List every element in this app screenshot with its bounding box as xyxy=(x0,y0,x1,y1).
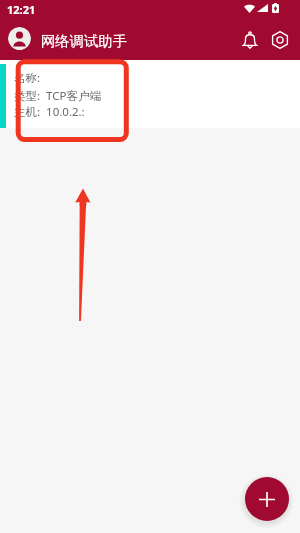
button[interactable]: 名称: xyxy=(0,60,300,128)
button[interactable]: Account xyxy=(8,27,31,50)
staticText: 主机: 10.0.2.: xyxy=(14,104,85,120)
staticText: 名称: xyxy=(14,70,47,86)
staticText: 网络调试助手 xyxy=(41,32,127,50)
button[interactable]: Notifications xyxy=(235,25,265,55)
staticText: 类型: TCP客户端 xyxy=(14,88,101,104)
button[interactable]: Settings xyxy=(265,25,295,55)
staticText: 12:21 xyxy=(7,2,36,17)
button[interactable]: Add xyxy=(245,477,289,521)
